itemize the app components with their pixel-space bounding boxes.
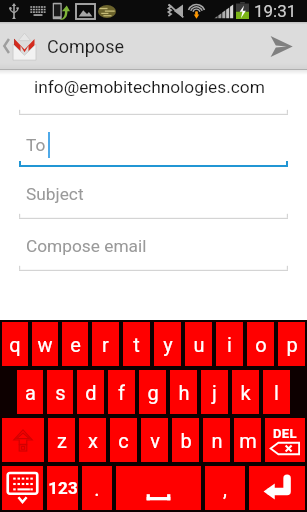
button[interactable]: q [2,322,28,366]
staticText: e [70,333,81,356]
button[interactable]: d [77,370,104,414]
button[interactable] [0,114,307,166]
staticText: h [178,381,190,404]
button[interactable]: i [216,322,243,366]
button[interactable]: s [47,370,73,414]
button[interactable]: . [82,466,112,510]
staticText: u [193,333,205,356]
button[interactable]: g [139,370,166,414]
staticText: b [180,429,192,452]
button[interactable]: f [108,370,135,414]
staticText: DEL [273,426,297,441]
staticText: info@emobitechnologies.com [34,77,265,97]
button[interactable]: h [170,370,197,414]
button[interactable]: b [172,418,199,462]
button[interactable] [0,70,307,114]
staticText: i [227,333,232,356]
button[interactable]: l [263,370,290,414]
button[interactable]: a [17,370,43,414]
staticText: d [85,381,97,404]
button[interactable]: p [278,322,305,366]
staticText: a [25,381,36,404]
button[interactable]: x [79,418,106,462]
button[interactable]: t [123,322,150,366]
button[interactable]: 123 [47,466,78,510]
staticText: 19:31 [254,1,297,21]
button[interactable]: c [110,418,137,462]
staticText: z [57,429,67,452]
staticText: m [239,429,257,452]
staticText: g [147,381,159,404]
button[interactable]: w [32,322,58,366]
button[interactable]: Send [255,22,307,70]
staticText: p [286,333,298,356]
staticText: v [150,429,160,452]
staticText: l [274,381,279,404]
button[interactable]: z [48,418,75,462]
button[interactable]: e [62,322,88,366]
staticText: c [118,429,129,452]
staticText: To [26,135,46,155]
button[interactable]: , [205,466,245,510]
staticText: k [240,381,251,404]
staticText: r [102,333,109,356]
staticText: 123 [48,478,78,498]
staticText: w [37,333,53,356]
button[interactable]: Delete [265,418,305,462]
staticText: , [223,477,227,500]
staticText: x [88,429,98,452]
button[interactable]: r [92,322,119,366]
staticText: s [55,381,66,404]
button[interactable]: Space [116,466,201,510]
staticText: o [255,333,267,356]
button[interactable] [0,218,307,270]
button[interactable]: u [185,322,212,366]
staticText: Subject [26,184,84,204]
button[interactable]: m [234,418,261,462]
button[interactable]: o [247,322,274,366]
button[interactable]: k [232,370,259,414]
staticText: f [118,381,125,404]
staticText: j [212,381,217,404]
staticText: n [211,429,223,452]
button[interactable]: Enter [249,466,305,510]
button[interactable]: j [201,370,228,414]
staticText: . [94,477,100,500]
staticText: Compose email [26,236,147,256]
button[interactable]: y [154,322,181,366]
button[interactable]: n [203,418,230,462]
button[interactable]: Navigate up [0,22,124,70]
staticText: q [9,333,21,356]
button[interactable]: Shift [2,418,44,462]
button[interactable]: v [141,418,168,462]
staticText: y [163,333,173,356]
button[interactable] [0,166,307,218]
staticText: Compose [47,36,124,57]
button[interactable]: Hide keyboard [2,466,43,510]
staticText: t [133,333,140,356]
